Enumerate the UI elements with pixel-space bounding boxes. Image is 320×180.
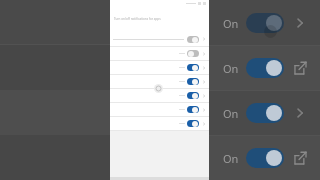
button[interactable]: Toggle — [110, 47, 209, 60]
button[interactable]: Toggle — [187, 106, 199, 113]
button[interactable]: Toggle — [110, 89, 209, 102]
button[interactable]: Open details — [292, 15, 308, 31]
button[interactable]: Toggle — [187, 36, 199, 43]
staticText: Turn on/off notifications for apps — [114, 17, 161, 21]
staticText: On — [223, 61, 239, 76]
button[interactable]: On — [209, 0, 320, 45]
button[interactable]: Toggle notifications — [246, 103, 284, 123]
button[interactable]: Toggle — [110, 103, 209, 116]
button[interactable]: Toggle notifications — [246, 13, 284, 33]
button[interactable]: Toggle — [187, 92, 199, 99]
button[interactable]: Toggle notifications — [246, 58, 284, 78]
staticText: On — [223, 151, 239, 166]
button[interactable]: Toggle — [187, 64, 199, 71]
button[interactable]: Toggle — [110, 32, 209, 46]
button[interactable]: Toggle — [110, 61, 209, 74]
button[interactable]: Toggle — [187, 78, 199, 85]
button[interactable]: Toggle — [187, 50, 199, 57]
button[interactable]: Toggle — [110, 75, 209, 88]
staticText: On — [223, 106, 239, 121]
button[interactable]: On — [209, 46, 320, 90]
button[interactable]: Open in new window — [292, 150, 308, 166]
button[interactable]: Open in new window — [292, 60, 308, 76]
button[interactable]: Toggle — [187, 120, 199, 127]
button[interactable]: Open details — [292, 105, 308, 121]
staticText: On — [223, 16, 239, 31]
button[interactable]: On — [209, 91, 320, 135]
button[interactable]: On — [209, 136, 320, 180]
button[interactable]: Toggle notifications — [246, 148, 284, 168]
button[interactable]: Toggle — [110, 117, 209, 130]
